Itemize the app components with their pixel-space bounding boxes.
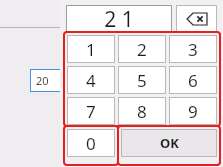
staticText: 4 <box>86 69 96 92</box>
button[interactable]: 0 <box>67 129 115 157</box>
button[interactable]: 6 <box>169 66 217 94</box>
staticText: OK <box>160 134 179 152</box>
staticText: 9 <box>188 100 198 123</box>
button[interactable]: 9 <box>169 97 217 125</box>
button[interactable]: Backspace <box>176 5 217 32</box>
staticText: 1 <box>86 38 96 61</box>
staticText: 3 <box>188 38 198 61</box>
button[interactable]: 8 <box>118 97 166 125</box>
button[interactable]: 7 <box>67 97 115 125</box>
staticText: 7 <box>86 100 96 123</box>
staticText: 5 <box>137 69 147 92</box>
staticText: 2 1 <box>104 5 134 32</box>
button[interactable]: 3 <box>169 35 217 63</box>
button[interactable]: 2 1 <box>66 5 172 32</box>
button[interactable]: OK <box>121 129 217 157</box>
button[interactable]: 4 <box>67 66 115 94</box>
button[interactable]: 2 <box>118 35 166 63</box>
button[interactable]: 1 <box>67 35 115 63</box>
button[interactable]: 5 <box>118 66 166 94</box>
staticText: 20 <box>36 73 49 88</box>
button[interactable]: 20 <box>30 69 62 92</box>
staticText: 8 <box>137 100 147 123</box>
staticText: 6 <box>188 69 198 92</box>
staticText: 0 <box>86 132 96 155</box>
staticText: 2 <box>137 38 147 61</box>
